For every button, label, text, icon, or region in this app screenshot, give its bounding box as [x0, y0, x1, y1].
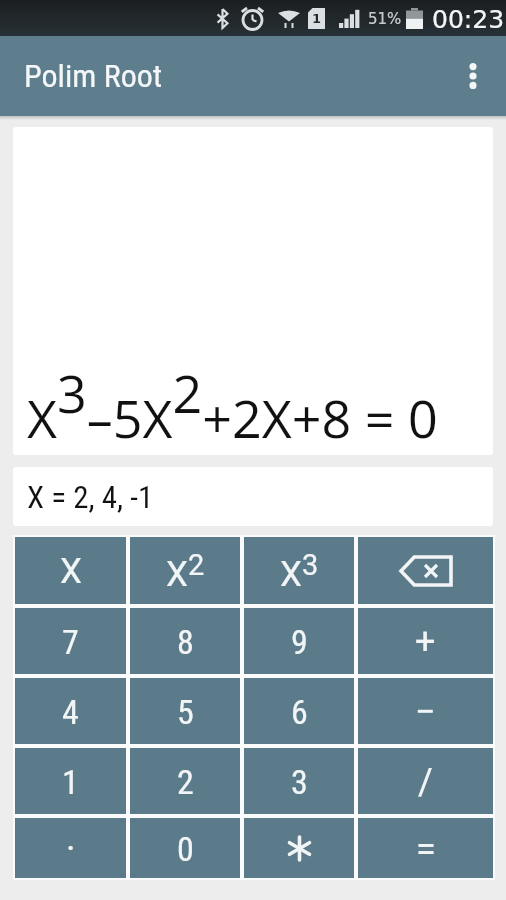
button[interactable]: 6: [244, 678, 354, 744]
button[interactable]: /: [358, 748, 493, 814]
staticText: 1: [312, 11, 322, 26]
staticText: 00:23: [432, 5, 505, 34]
staticText: +: [415, 621, 436, 663]
button[interactable]: 4: [15, 678, 126, 744]
staticText: X: [60, 551, 82, 592]
button[interactable]: X2: [130, 537, 240, 604]
button[interactable]: 8: [130, 608, 240, 674]
staticText: X3–5X2+2X+8 = 0: [27, 357, 438, 453]
button[interactable]: 7: [15, 608, 126, 674]
button[interactable]: X3: [244, 537, 354, 604]
button[interactable]: 9: [244, 608, 354, 674]
staticText: 3: [291, 762, 308, 802]
staticText: =: [416, 828, 436, 870]
staticText: 51%: [368, 10, 402, 27]
button[interactable]: [244, 818, 354, 878]
button[interactable]: 0: [130, 818, 240, 878]
staticText: 4: [62, 692, 79, 732]
staticText: 1: [62, 762, 79, 802]
button[interactable]: 1: [15, 748, 126, 814]
staticText: 6: [291, 692, 308, 732]
staticText: −: [415, 691, 436, 733]
button[interactable]: 2: [130, 748, 240, 814]
staticText: X = 2, 4, -1: [27, 479, 154, 515]
staticText: ·: [66, 828, 76, 870]
staticText: 9: [291, 622, 308, 662]
button[interactable]: [358, 537, 493, 604]
button[interactable]: ·: [15, 818, 126, 878]
staticText: 2: [177, 762, 194, 802]
staticText: Polim Root: [24, 57, 163, 95]
staticText: X2: [166, 548, 205, 595]
button[interactable]: +: [358, 608, 493, 674]
button[interactable]: =: [358, 818, 493, 878]
staticText: 0: [177, 829, 194, 869]
button[interactable]: 3: [244, 748, 354, 814]
staticText: 7: [62, 622, 79, 662]
button[interactable]: [440, 36, 506, 116]
button[interactable]: 5: [130, 678, 240, 744]
button[interactable]: X: [15, 537, 126, 604]
staticText: 8: [177, 622, 194, 662]
staticText: 5: [177, 692, 194, 732]
staticText: X3: [280, 548, 319, 595]
button[interactable]: −: [358, 678, 493, 744]
staticText: /: [418, 761, 433, 803]
